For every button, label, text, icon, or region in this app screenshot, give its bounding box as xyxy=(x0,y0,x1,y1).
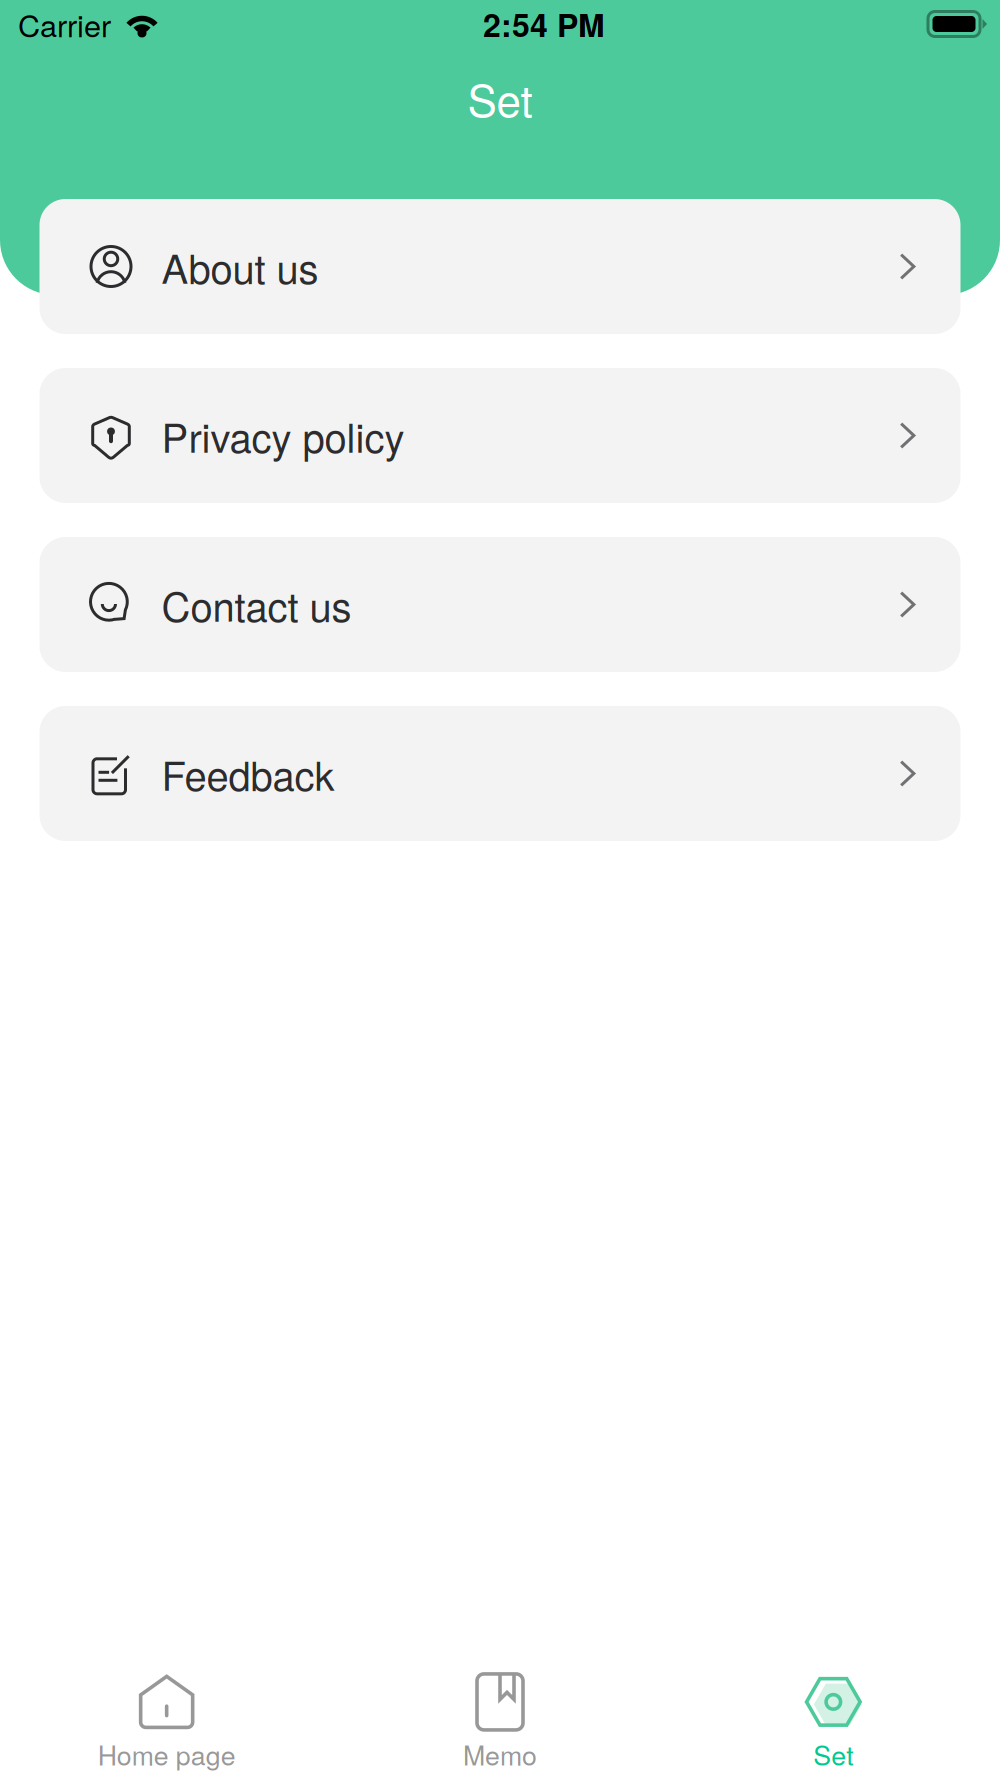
staticText: Home page xyxy=(98,1735,236,1773)
button[interactable]: Set xyxy=(667,1673,1000,1773)
button[interactable]: Privacy policy xyxy=(39,368,960,503)
staticText: Set xyxy=(813,1735,853,1773)
button[interactable]: Memo xyxy=(333,1673,667,1773)
button[interactable]: Home page xyxy=(0,1673,333,1773)
staticText: Privacy policy xyxy=(161,407,404,464)
staticText: Contact us xyxy=(161,576,351,633)
button[interactable]: Feedback xyxy=(39,706,960,841)
staticText: Memo xyxy=(463,1735,537,1773)
staticText: Feedback xyxy=(161,745,334,802)
button[interactable]: Contact us xyxy=(39,537,960,672)
staticText: Carrier xyxy=(18,2,111,46)
staticText: About us xyxy=(161,238,318,295)
staticText: Set xyxy=(467,66,532,129)
staticText: 2:54 PM xyxy=(483,1,605,47)
button[interactable]: About us xyxy=(39,199,960,334)
